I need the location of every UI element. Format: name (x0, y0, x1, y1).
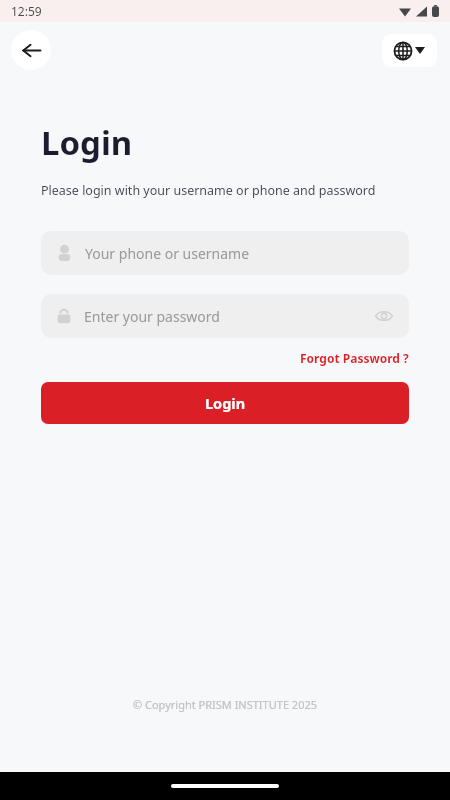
button[interactable]: Show password (373, 305, 395, 327)
staticText: Login (205, 393, 246, 413)
button[interactable]: Login (41, 382, 409, 424)
button[interactable]: Enter your password (41, 294, 409, 338)
button[interactable]: Back (11, 30, 51, 70)
staticText: Enter your password (84, 307, 373, 326)
staticText: 12:59 (11, 3, 42, 19)
button[interactable]: Forgot Password ? (300, 350, 409, 366)
staticText: Your phone or username (85, 244, 250, 263)
button[interactable]: Your phone or username (41, 231, 409, 275)
staticText: Please login with your username or phone… (41, 182, 376, 199)
staticText: © Copyright PRISM INSTITUTE 2025 (0, 697, 450, 712)
staticText: Login (41, 120, 133, 165)
button[interactable]: Change language (382, 34, 437, 67)
